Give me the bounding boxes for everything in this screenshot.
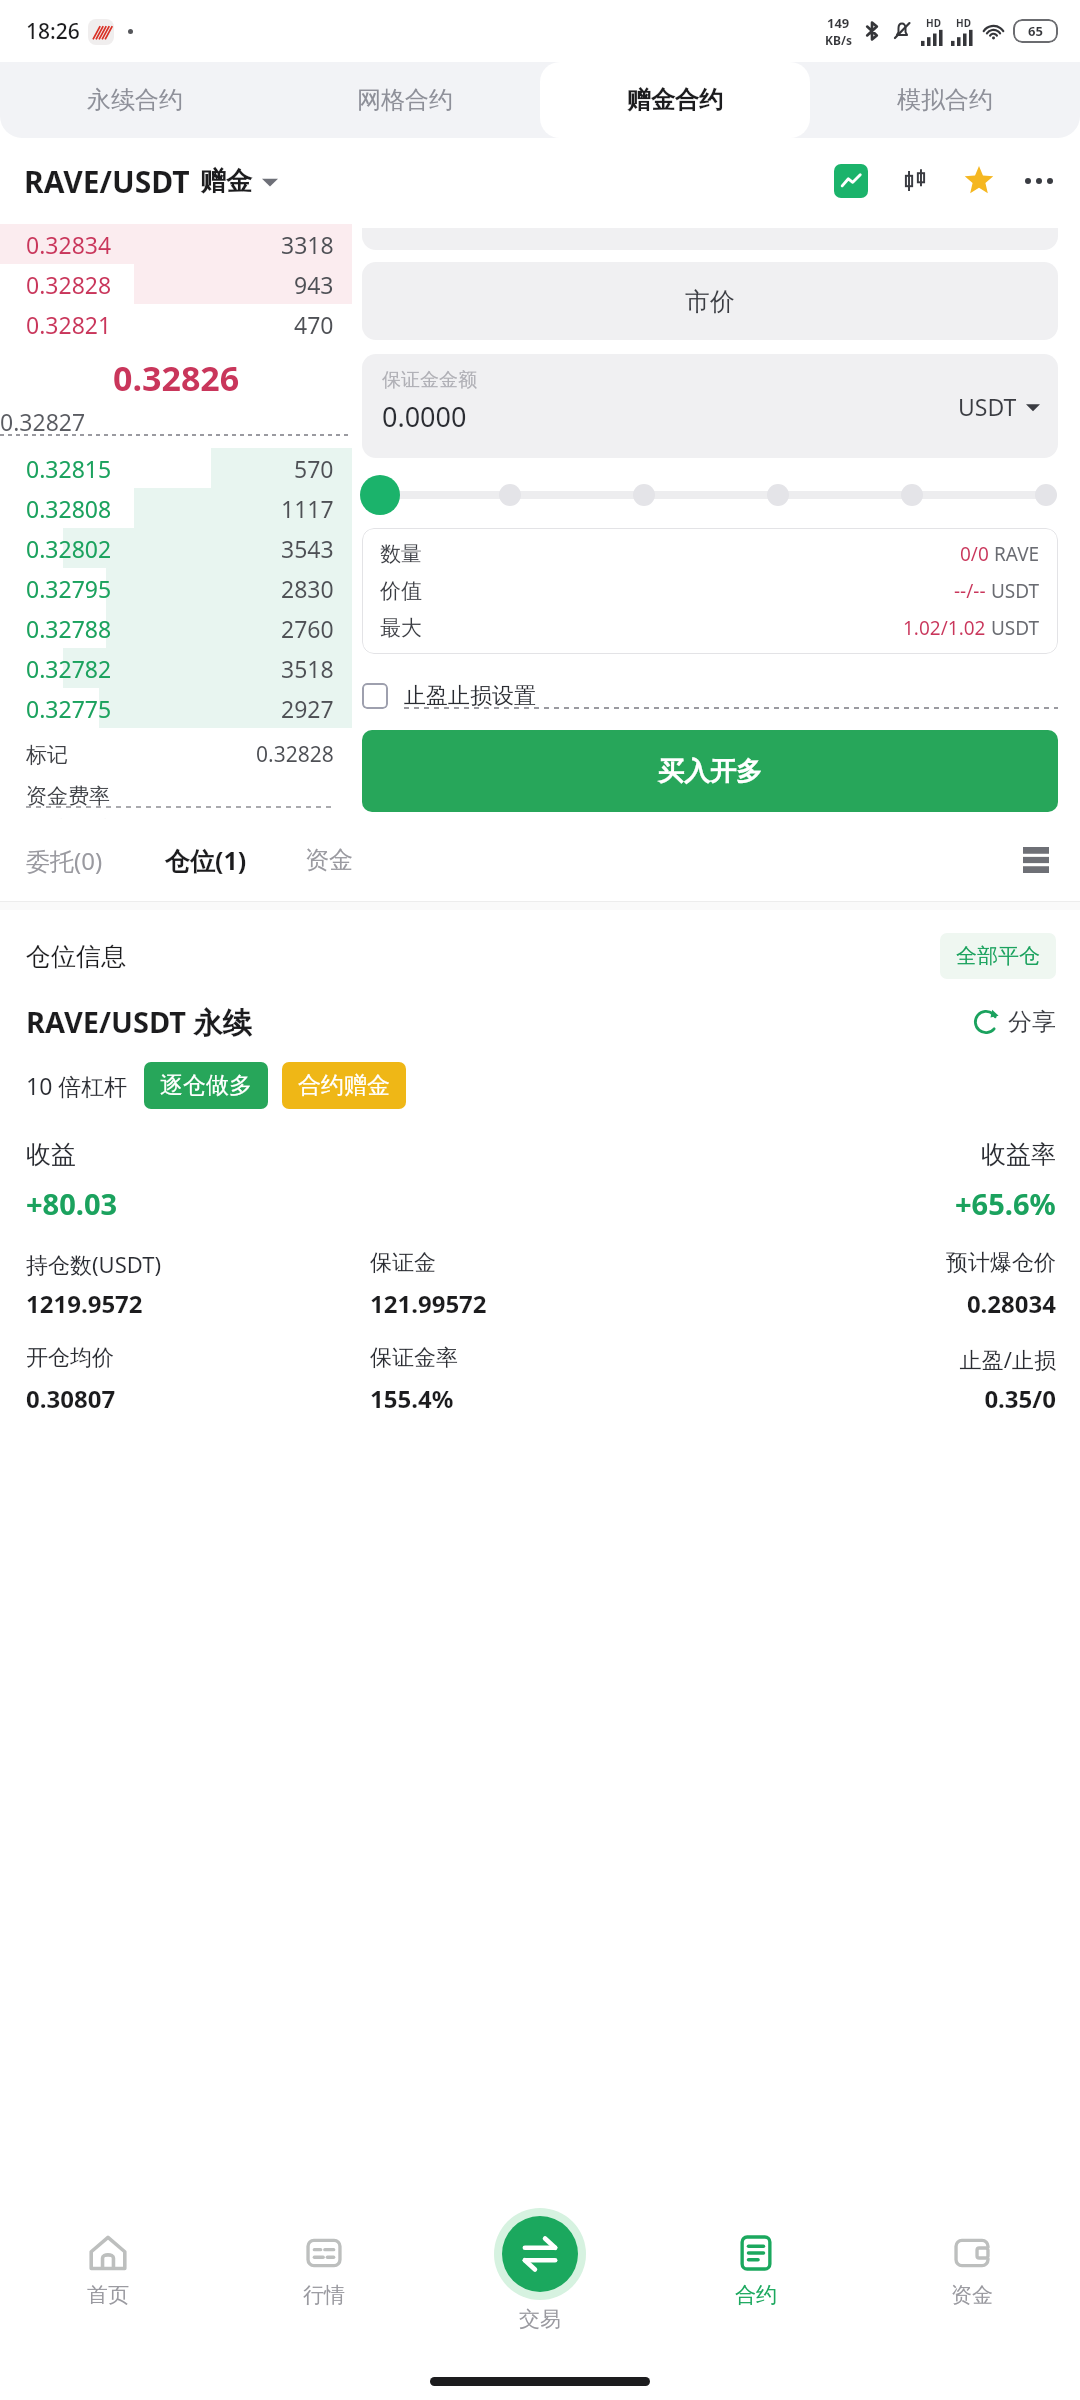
button[interactable]: 止盈止损设置 (362, 676, 1058, 716)
staticText: 0.32826 (113, 355, 240, 401)
button[interactable]: 行情 (216, 2232, 432, 2354)
button[interactable]: 0.32834 (0, 224, 352, 264)
staticText: HD (926, 16, 941, 30)
staticText: 最大 (380, 615, 422, 641)
button[interactable]: 分享 (972, 1007, 1056, 1037)
staticText: HD (956, 16, 971, 30)
staticText: 18:26 (26, 17, 80, 46)
staticText: 0.0000 (382, 398, 467, 435)
staticText: 网格合约 (357, 85, 453, 115)
button[interactable]: 0.32775 (0, 688, 352, 728)
staticText: 10 倍杠杆 (26, 1070, 128, 1101)
staticText: 2927 (281, 693, 334, 724)
staticText: 标记 (26, 742, 68, 768)
staticText: 943 (294, 269, 334, 300)
button[interactable]: 委托(0) (26, 844, 103, 877)
staticText: 0.32828 (26, 269, 112, 300)
button[interactable]: Candlestick chart (896, 162, 934, 200)
staticText: 数量 (380, 541, 422, 567)
staticText: USDT (958, 391, 1017, 422)
staticText: 委托(0) (26, 844, 103, 877)
button[interactable]: Favorite (960, 162, 998, 200)
button[interactable]: 网格合约 (270, 62, 540, 138)
staticText: 0.32827 (0, 406, 86, 437)
staticText: USDT (986, 615, 1040, 641)
staticText: 1.02/1.02 (903, 615, 986, 641)
staticText: 3318 (281, 229, 334, 260)
button[interactable]: 0.32828 (0, 264, 352, 304)
button[interactable]: Trade (494, 2208, 586, 2300)
staticText: 470 (294, 309, 334, 340)
staticText: 资金 (951, 2282, 993, 2308)
staticText: 121.99572 (370, 1287, 713, 1320)
button[interactable]: 全部平仓 (940, 933, 1056, 979)
staticText: 149 (827, 14, 850, 32)
staticText: KB/s (825, 32, 852, 48)
button[interactable]: 资金 (864, 2232, 1080, 2354)
staticText: 买入开多 (658, 755, 762, 788)
staticText: 0.32775 (26, 693, 112, 724)
button[interactable]: 市价 (362, 262, 1058, 340)
button[interactable]: 保证金金额 (362, 354, 1058, 458)
button[interactable]: 0.32782 (0, 648, 352, 688)
button[interactable]: 首页 (0, 2232, 216, 2354)
button[interactable]: 0.32802 (0, 528, 352, 568)
staticText: 止盈/止损 (713, 1344, 1056, 1374)
staticText: 保证金金额 (382, 368, 477, 392)
staticText: 全部平仓 (956, 943, 1040, 969)
staticText: 1117 (281, 493, 334, 524)
staticText: 合约 (735, 2282, 777, 2308)
staticText: 合约赠金 (298, 1071, 390, 1100)
staticText: USDT (986, 578, 1040, 604)
staticText: 155.4% (370, 1382, 713, 1415)
button[interactable]: 买入开多 (362, 730, 1058, 812)
button[interactable]: 0.32815 (0, 448, 352, 488)
staticText: 交易 (519, 2306, 561, 2332)
button[interactable]: 永续合约 (0, 62, 270, 138)
button[interactable]: 资金费率 (26, 775, 334, 816)
staticText: 止盈止损设置 (404, 682, 536, 710)
staticText: 2830 (281, 573, 334, 604)
staticText: 0.32788 (26, 613, 112, 644)
button[interactable]: 标记 (26, 734, 334, 775)
button[interactable]: RAVE/USDT (24, 161, 278, 202)
staticText: 65 (1028, 22, 1043, 40)
staticText: 持仓数(USDT) (26, 1249, 370, 1279)
staticText: 0.28034 (713, 1287, 1056, 1320)
button[interactable]: 合约赠金 (282, 1062, 406, 1109)
staticText: 0.32802 (26, 533, 112, 564)
staticText: 首页 (87, 2282, 129, 2308)
button[interactable]: 模拟合约 (810, 62, 1080, 138)
button[interactable]: 0.32788 (0, 608, 352, 648)
button[interactable]: 0.32795 (0, 568, 352, 608)
button[interactable]: 0.32821 (0, 304, 352, 344)
staticText: 价值 (380, 578, 422, 604)
staticText: 保证金 (370, 1249, 713, 1277)
button[interactable]: 合约 (648, 2232, 864, 2354)
staticText: 0.30807 (26, 1382, 370, 1415)
staticText: 3543 (281, 533, 334, 564)
button[interactable]: 0.32808 (0, 488, 352, 528)
staticText: +80.03 (26, 1184, 118, 1223)
staticText: 0.32808 (26, 493, 112, 524)
button[interactable]: 仓位(1) (165, 843, 247, 877)
staticText: 保证金率 (370, 1344, 713, 1372)
staticText: 仓位信息 (26, 941, 126, 972)
staticText: 0.35/0 (713, 1382, 1056, 1415)
staticText: 0.32821 (26, 309, 112, 340)
staticText: --/-- (954, 578, 986, 604)
staticText: 1219.9572 (26, 1287, 370, 1320)
button[interactable]: 逐仓做多 (144, 1062, 268, 1109)
button[interactable]: Line chart (832, 162, 870, 200)
button[interactable]: 赠金合约 (540, 62, 810, 138)
staticText: 收益 (26, 1139, 76, 1170)
button[interactable]: More options (1020, 162, 1058, 200)
button[interactable]: 资金 (305, 845, 353, 875)
staticText: 0.32795 (26, 573, 112, 604)
button[interactable]: Filter list (1016, 840, 1056, 880)
staticText: RAVE/USDT 永续 (26, 1002, 252, 1042)
staticText: +65.6% (955, 1184, 1056, 1223)
